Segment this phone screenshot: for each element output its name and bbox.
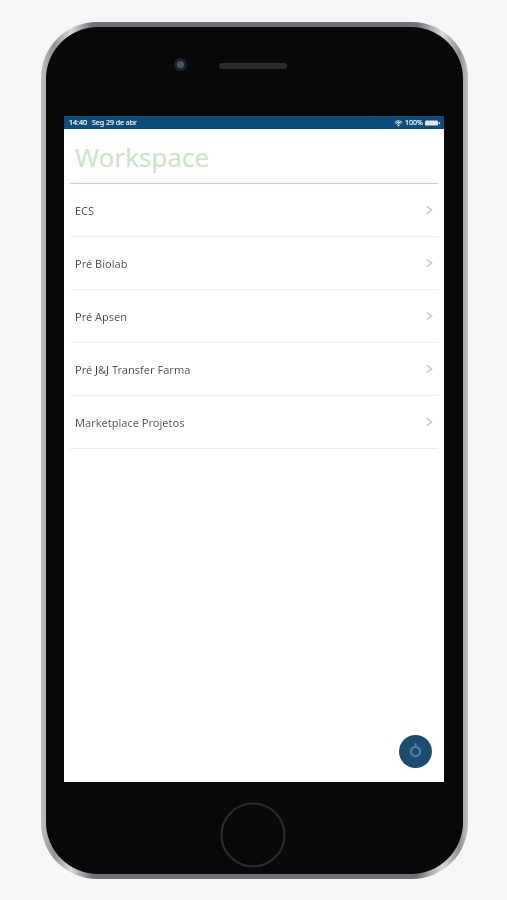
button[interactable]: Pré Biolab	[64, 237, 444, 289]
button[interactable]: Add	[399, 735, 432, 768]
staticText: Workspace	[75, 139, 210, 174]
button[interactable]: Marketplace Projetos	[64, 396, 444, 448]
button[interactable]: Pré J&J Transfer Farma	[64, 343, 444, 395]
button[interactable]: ECS	[64, 184, 444, 236]
staticText: Pré J&J Transfer Farma	[75, 362, 191, 377]
button[interactable]: Pré Apsen	[64, 290, 444, 342]
staticText: Seg 29 de abr	[92, 118, 137, 128]
staticText: Pré Apsen	[75, 309, 128, 324]
staticText: 14:40	[69, 118, 87, 128]
staticText: Pré Biolab	[75, 256, 128, 271]
staticText: 100%	[405, 118, 423, 128]
staticText: ECS	[75, 203, 95, 218]
staticText: Marketplace Projetos	[75, 415, 185, 430]
